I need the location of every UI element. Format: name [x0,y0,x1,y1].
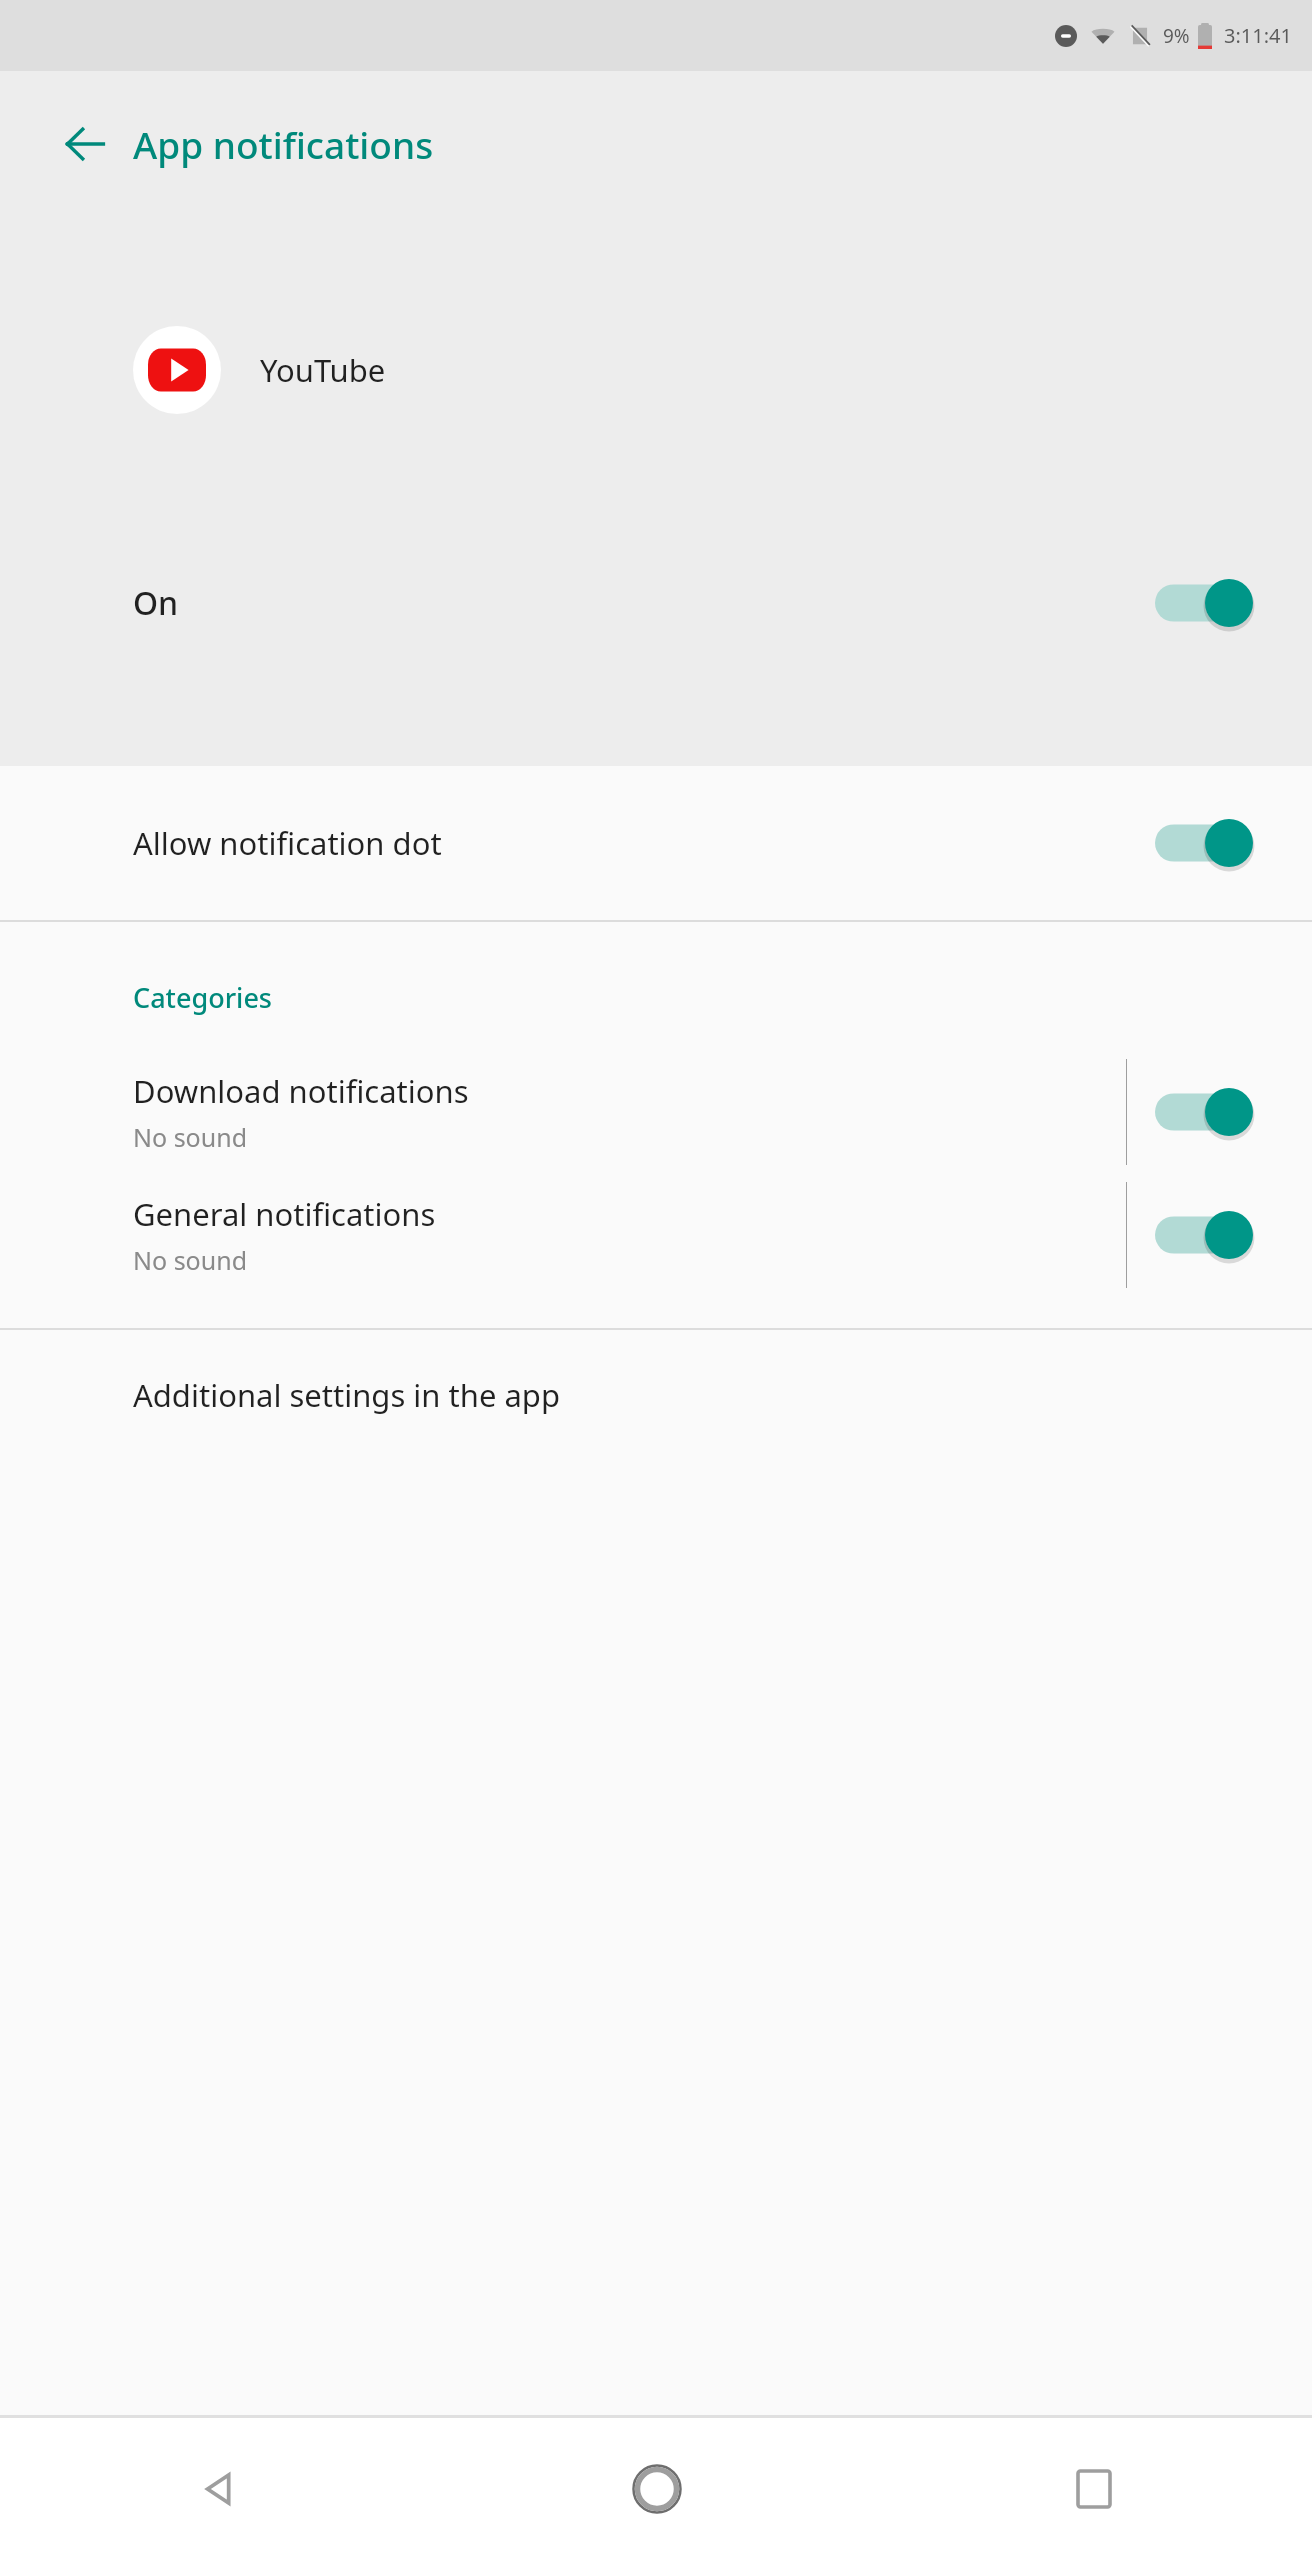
staticText: No sound [133,1243,248,1277]
staticText: Categories [133,979,272,1016]
staticText: 9% [1163,23,1190,49]
staticText: YouTube [260,349,386,391]
staticText: Download notifications [133,1070,469,1112]
button[interactable]: General notifications [0,1173,1312,1296]
button[interactable]: Allow notification dot [0,766,1312,920]
button[interactable]: Toggle [1155,813,1255,873]
button[interactable]: Recents [875,2418,1312,2560]
button[interactable]: Back [0,2418,438,2560]
button[interactable]: Toggle [1155,1082,1255,1142]
button[interactable]: YouTube [0,300,1312,440]
staticText: Additional settings in the app [133,1374,560,1416]
staticText: No sound [133,1120,248,1154]
button[interactable]: Download notifications [0,1050,1312,1173]
button[interactable]: On [0,543,1312,663]
button[interactable]: Back [40,99,130,189]
staticText: General notifications [133,1193,436,1235]
button[interactable]: Additional settings in the app [0,1330,1312,1460]
staticText: App notifications [133,119,434,169]
button[interactable]: Toggle [1155,573,1255,633]
staticText: 3:11:41 [1224,22,1292,49]
button[interactable]: Toggle [1155,1205,1255,1265]
staticText: Allow notification dot [133,822,442,864]
staticText: On [133,581,179,625]
button[interactable]: Home [438,2418,875,2560]
